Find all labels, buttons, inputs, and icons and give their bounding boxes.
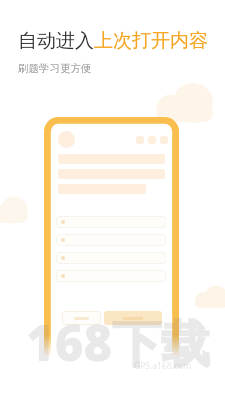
button[interactable] <box>104 311 162 325</box>
staticText: 刷题学习更方便 <box>18 62 92 75</box>
button[interactable] <box>56 216 166 228</box>
button[interactable] <box>56 252 166 264</box>
staticText: 自动进入上次打开内容 <box>18 29 208 53</box>
button[interactable] <box>62 311 101 325</box>
staticText: GPS.a168.com <box>134 360 192 372</box>
staticText: 168下载 <box>26 309 211 376</box>
button[interactable] <box>56 234 166 246</box>
button[interactable] <box>56 270 166 282</box>
